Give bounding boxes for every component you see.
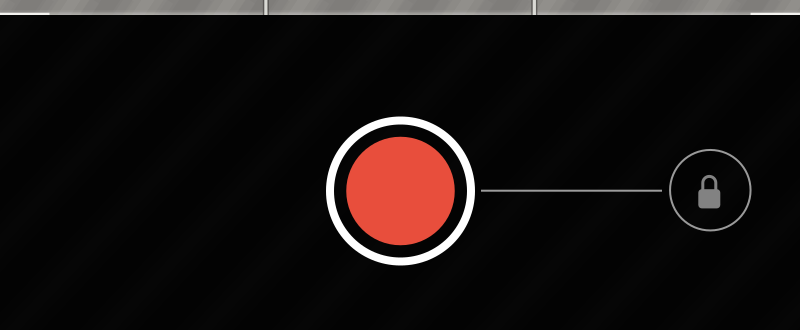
button[interactable]: Lock recording bbox=[669, 149, 751, 231]
button[interactable]: Record bbox=[326, 117, 474, 265]
